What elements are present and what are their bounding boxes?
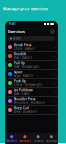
button[interactable]: Workout xyxy=(5,135,18,143)
button[interactable]: Bicep Curl xyxy=(5,106,58,115)
staticText: Legs · Barbell xyxy=(14,74,33,77)
staticText: Search xyxy=(13,37,21,40)
staticText: 9:41 xyxy=(9,22,16,26)
staticText: Manage your exercises xyxy=(3,6,48,11)
staticText: Squat xyxy=(14,70,22,74)
staticText: Pull Up xyxy=(14,61,25,65)
staticText: Deadlift xyxy=(14,52,26,56)
staticText: Arms · Dumbbell xyxy=(14,110,37,113)
staticText: Lat Pulldown xyxy=(14,88,33,92)
staticText: Workout xyxy=(6,139,17,143)
staticText: › xyxy=(54,98,55,104)
staticText: › xyxy=(54,89,55,95)
staticText: › xyxy=(54,107,55,113)
button[interactable]: Squat xyxy=(5,70,58,79)
staticText: › xyxy=(54,44,55,50)
staticText: › xyxy=(54,71,55,77)
staticText: Exercises xyxy=(19,139,30,143)
button[interactable]: Bench Press xyxy=(5,43,58,52)
staticText: Chest · Barbell xyxy=(14,47,35,50)
staticText: › xyxy=(54,80,55,86)
staticText: Back · Bodyweight xyxy=(14,65,39,68)
button[interactable]: Settings xyxy=(45,135,58,143)
staticText: Chest · Bodyweight xyxy=(14,83,42,86)
staticText: Exercises xyxy=(8,29,25,34)
staticText: Back · Cable xyxy=(14,92,30,95)
button[interactable]: Lat Pulldown xyxy=(5,88,58,97)
staticText: › xyxy=(54,53,55,59)
button[interactable]: Pull Up xyxy=(5,61,58,70)
button[interactable]: History xyxy=(31,135,45,143)
staticText: Push Up xyxy=(14,79,26,83)
staticText: Settings xyxy=(46,139,57,143)
staticText: History xyxy=(34,139,43,143)
button[interactable]: Push Up xyxy=(5,79,58,88)
staticText: Bicep Curl xyxy=(14,106,29,110)
staticText: › xyxy=(54,62,55,68)
staticText: Shoulder Press xyxy=(14,97,35,101)
button[interactable]: Deadlift xyxy=(5,52,58,61)
button[interactable]: Shoulder Press xyxy=(5,97,58,106)
button[interactable]: Exercises xyxy=(18,135,31,143)
staticText: Shoulders · Dumbbell xyxy=(14,101,45,104)
staticText: Back · Barbell xyxy=(14,56,32,59)
staticText: Bench Press xyxy=(14,43,31,47)
button[interactable]: Add exercise xyxy=(50,29,55,34)
